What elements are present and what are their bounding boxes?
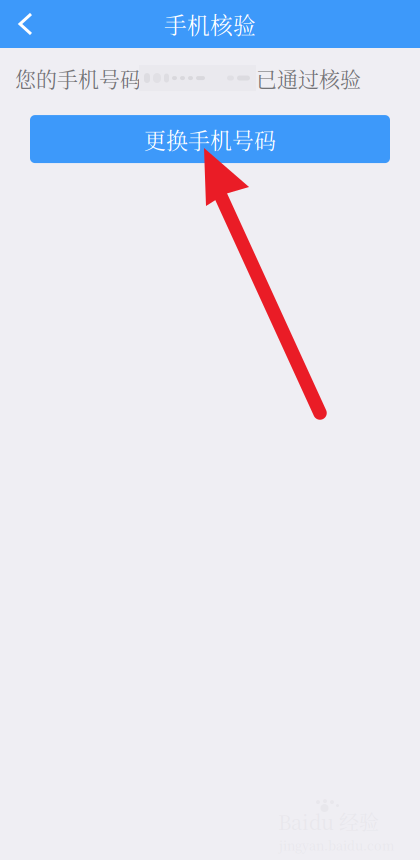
staticText: 已通过核验 bbox=[256, 63, 361, 93]
staticText: 您的手机号码 bbox=[15, 63, 141, 93]
staticText: 手机核验 bbox=[164, 8, 256, 40]
button[interactable]: 更换手机号码 bbox=[30, 115, 390, 163]
button[interactable]: Back bbox=[12, 7, 46, 41]
staticText: 更换手机号码 bbox=[144, 123, 276, 155]
